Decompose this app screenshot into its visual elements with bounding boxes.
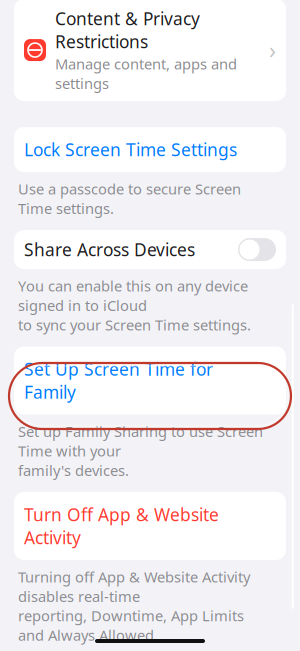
button[interactable]: Set Up Screen Time for Family xyxy=(14,346,286,414)
staticText: Content & Privacy Restrictions xyxy=(55,7,200,53)
button[interactable]: Content & Privacy Restrictions xyxy=(14,0,286,101)
staticText: Set up Family Sharing to use Screen Time… xyxy=(18,421,263,480)
button[interactable]: Turn Off App & Website Activity xyxy=(14,492,286,560)
staticText: Set Up Screen Time for Family xyxy=(24,357,213,403)
staticText: Use a passcode to secure Screen Time set… xyxy=(18,179,241,218)
staticText: Turning off App & Website Activity disab… xyxy=(18,567,250,645)
staticText: Manage content, apps and settings xyxy=(55,54,237,93)
staticText: › xyxy=(269,35,276,65)
button[interactable]: Share Across Devices xyxy=(14,230,286,269)
staticText: Lock Screen Time Settings xyxy=(24,138,237,161)
button[interactable]: Lock Screen Time Settings xyxy=(14,127,286,172)
staticText: You can enable this on any device signed… xyxy=(18,276,251,334)
staticText: Share Across Devices xyxy=(24,238,195,261)
staticText: Turn Off App & Website Activity xyxy=(24,503,219,549)
